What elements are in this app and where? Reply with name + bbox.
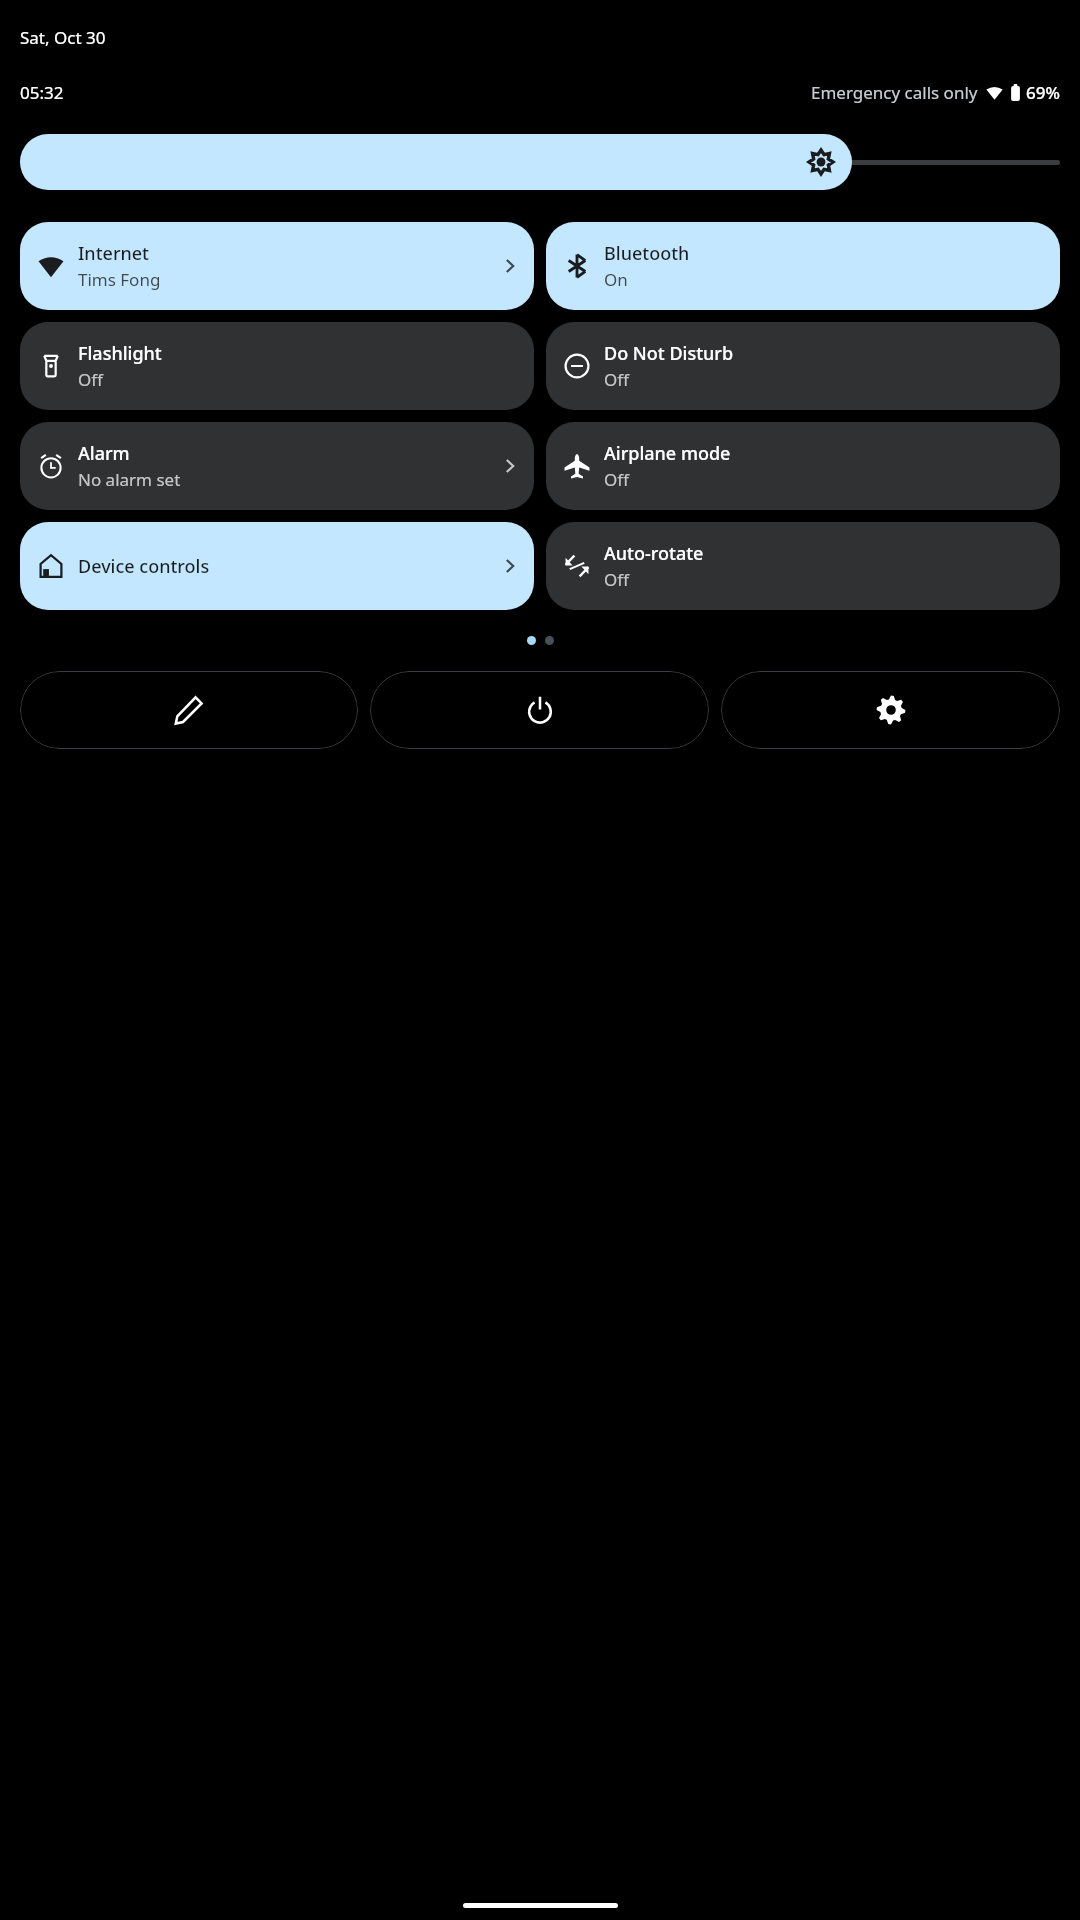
staticText: Flashlight: [78, 341, 162, 366]
button[interactable]: Device controls: [20, 522, 534, 610]
staticText: Bluetooth: [604, 241, 690, 266]
staticText: Off: [78, 368, 103, 391]
staticText: Alarm: [78, 441, 130, 466]
staticText: 69%: [1026, 81, 1060, 104]
staticText: Internet: [78, 241, 150, 266]
button[interactable]: Edit tiles: [20, 671, 358, 749]
staticText: On: [604, 268, 628, 291]
button[interactable]: Bluetooth: [546, 222, 1060, 310]
button[interactable]: Settings: [721, 671, 1060, 749]
staticText: Off: [604, 468, 629, 491]
staticText: Emergency calls only: [811, 81, 978, 104]
staticText: No alarm set: [78, 468, 181, 491]
button[interactable]: Alarm: [20, 422, 534, 510]
button[interactable]: Internet: [20, 222, 534, 310]
button[interactable]: Auto-rotate: [546, 522, 1060, 610]
staticText: Off: [604, 568, 629, 591]
staticText: Auto-rotate: [604, 541, 704, 566]
staticText: Off: [604, 368, 629, 391]
staticText: Sat, Oct 30: [20, 26, 106, 49]
button[interactable]: Do Not Disturb: [546, 322, 1060, 410]
button[interactable]: [20, 134, 1060, 190]
staticText: Device controls: [78, 554, 210, 579]
button[interactable]: Airplane mode: [546, 422, 1060, 510]
staticText: Do Not Disturb: [604, 341, 734, 366]
button[interactable]: Power: [370, 671, 709, 749]
button[interactable]: Flashlight: [20, 322, 534, 410]
staticText: 05:32: [20, 81, 64, 104]
staticText: Airplane mode: [604, 441, 731, 466]
staticText: Tims Fong: [78, 268, 161, 291]
